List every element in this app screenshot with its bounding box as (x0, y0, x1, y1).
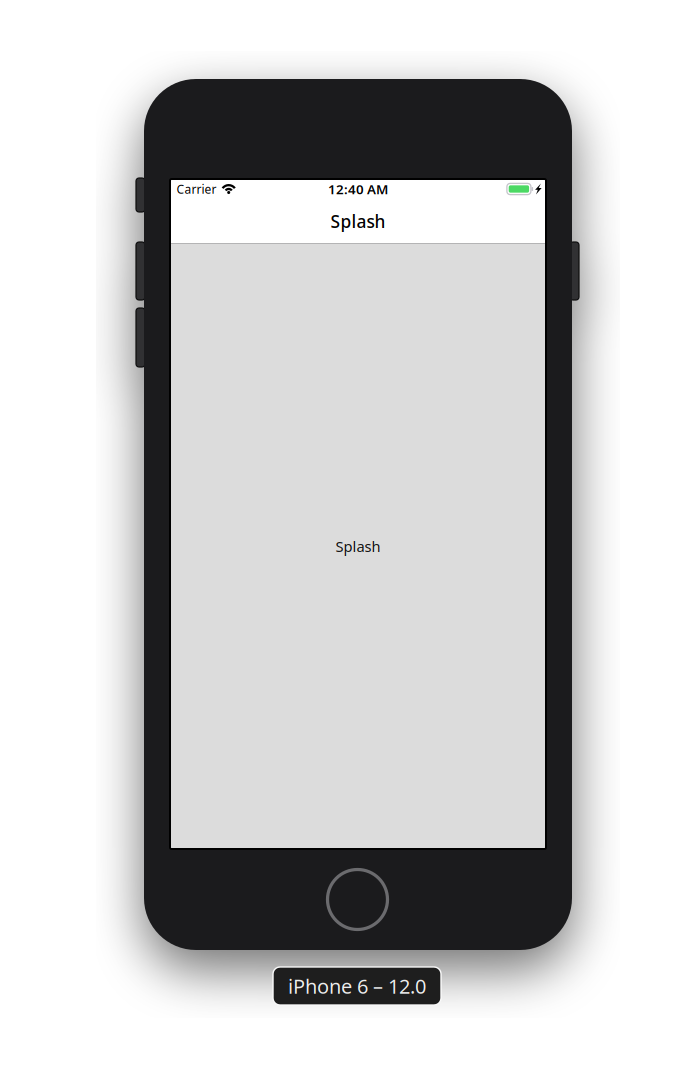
staticText: Splash (335, 536, 380, 556)
staticText: Carrier (176, 181, 216, 197)
button[interactable]: iPhone 6 – 12.0 (273, 967, 441, 1005)
staticText: 12:40 AM (328, 180, 388, 198)
staticText: iPhone 6 – 12.0 (288, 973, 426, 999)
staticText: Splash (330, 210, 385, 233)
